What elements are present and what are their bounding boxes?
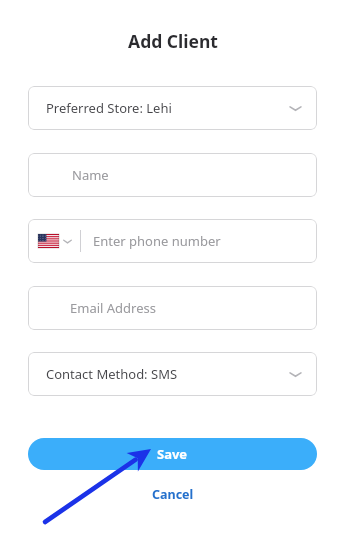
button[interactable]: Cancel bbox=[142, 483, 204, 506]
staticText: Cancel bbox=[152, 486, 194, 503]
staticText: Contact Method: SMS bbox=[46, 365, 178, 383]
button[interactable]: Save bbox=[28, 438, 317, 470]
staticText: Save bbox=[157, 445, 188, 463]
button[interactable]: Select country code bbox=[28, 219, 317, 263]
staticText: Enter phone number bbox=[93, 232, 221, 250]
staticText: Add Client bbox=[128, 29, 218, 53]
button[interactable]: Contact Method: SMS bbox=[28, 352, 317, 396]
button[interactable]: Name bbox=[28, 153, 317, 197]
staticText: Email Address bbox=[70, 299, 156, 317]
staticText: Preferred Store: Lehi bbox=[46, 99, 172, 117]
staticText: Name bbox=[72, 166, 109, 184]
button[interactable]: Select country code bbox=[38, 234, 72, 248]
button[interactable]: Preferred Store: Lehi bbox=[28, 86, 317, 130]
button[interactable]: Email Address bbox=[28, 286, 317, 330]
